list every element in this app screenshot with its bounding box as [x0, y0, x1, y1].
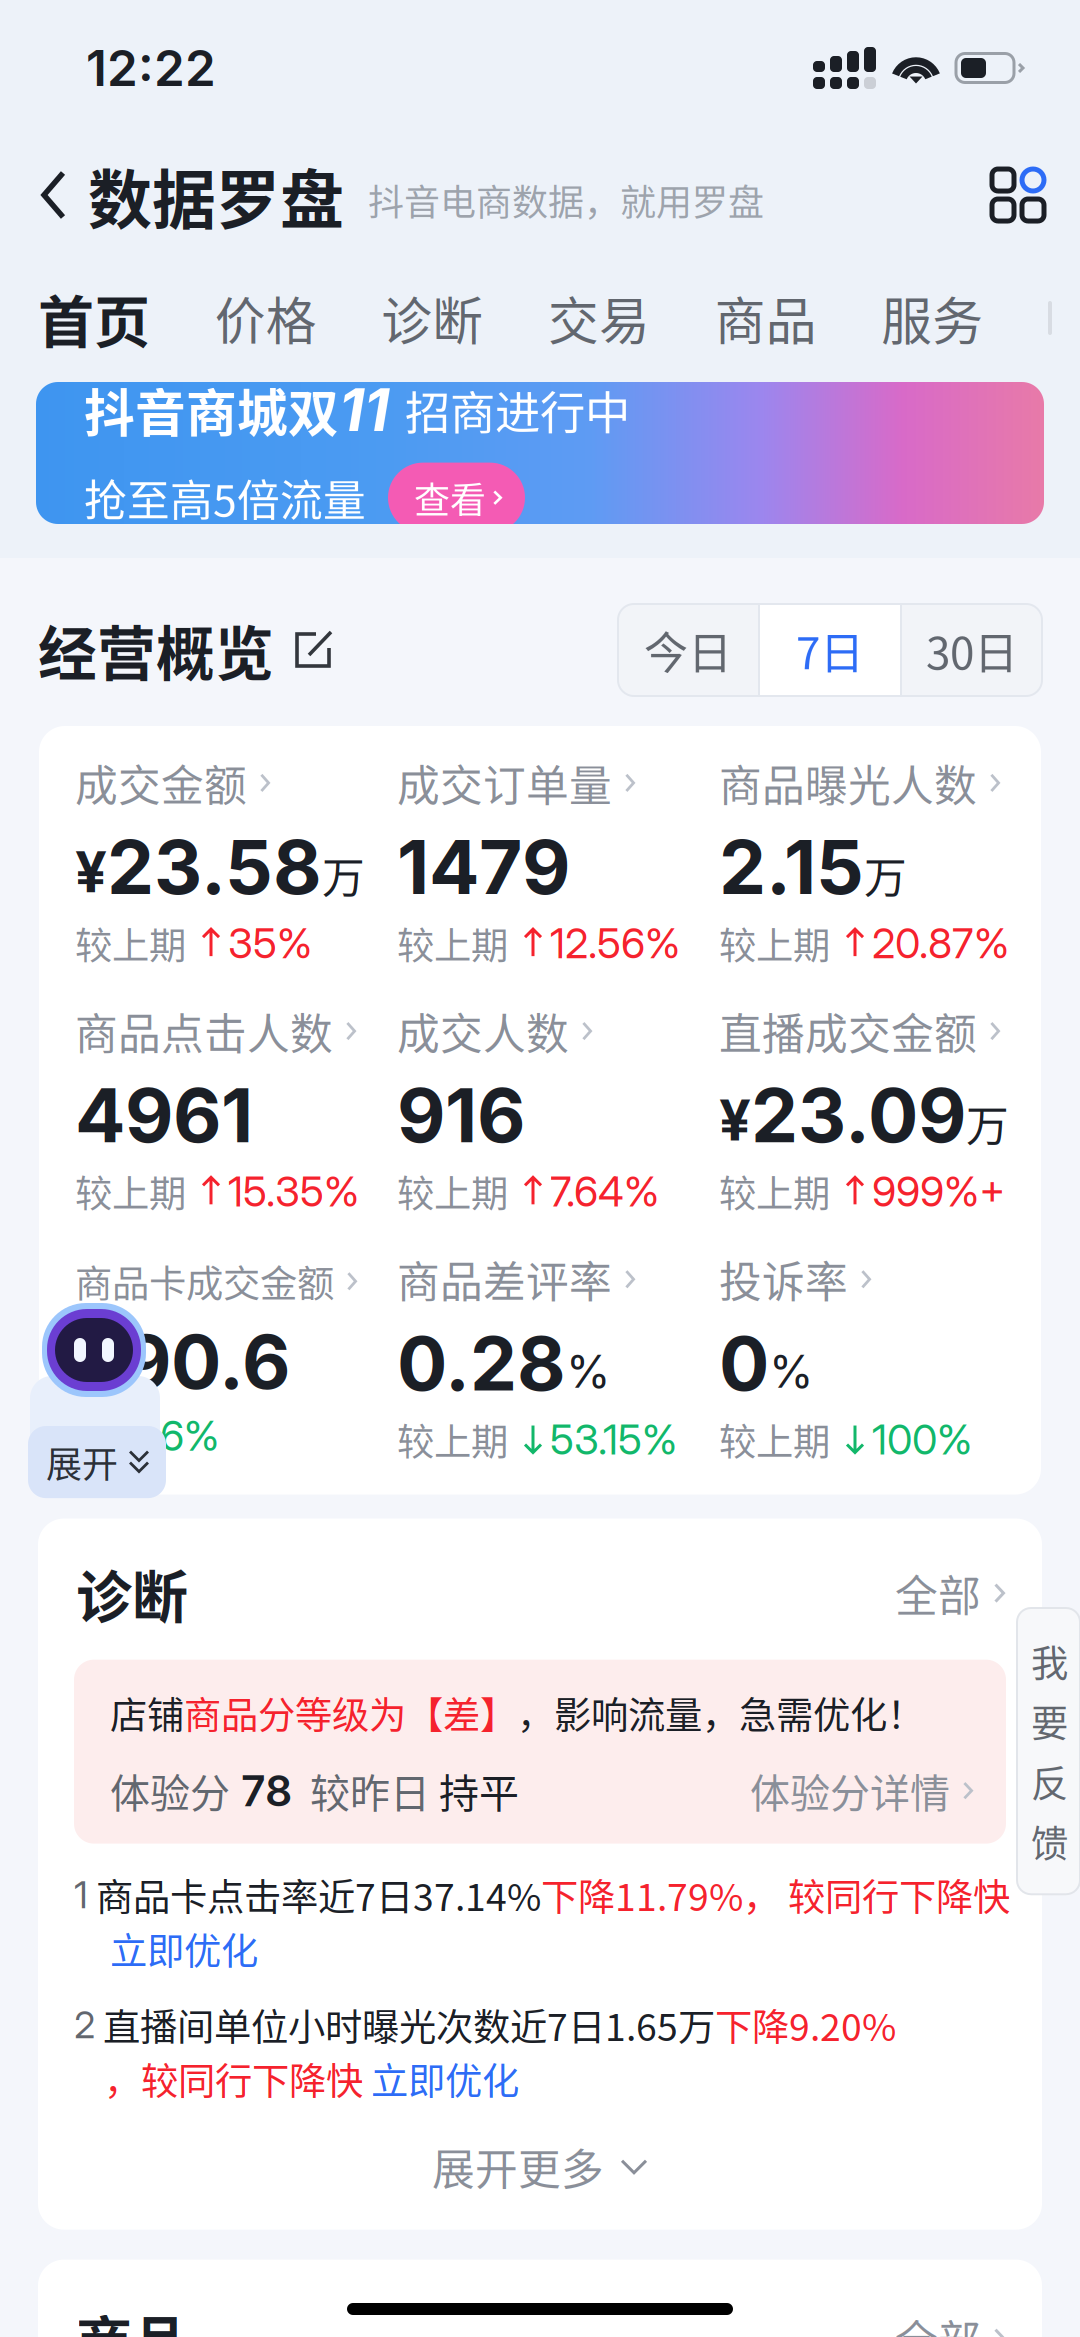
- button[interactable]: 30日: [902, 604, 1042, 696]
- staticText: 1479: [397, 822, 570, 912]
- button[interactable]: 今日: [618, 604, 758, 696]
- button[interactable]: 立即优化: [74, 1922, 258, 1976]
- staticText: 商品: [76, 2298, 188, 2337]
- staticText: 较上期: [397, 1412, 508, 1467]
- staticText: 万: [966, 1092, 1009, 1154]
- button[interactable]: 交易: [548, 281, 650, 355]
- staticText: 查看: [414, 472, 486, 524]
- staticText: 较上期: [397, 1164, 508, 1218]
- button[interactable]: 展开更多: [38, 2136, 1042, 2198]
- button[interactable]: 体验分详情: [750, 1762, 974, 1820]
- button[interactable]: 7日: [760, 604, 900, 696]
- staticText: 23.09: [751, 1070, 966, 1160]
- staticText: 投诉率: [719, 1248, 848, 1310]
- staticText: 价格: [215, 281, 317, 355]
- staticText: 较上期: [75, 916, 186, 970]
- button[interactable]: 商品曝光人数: [719, 752, 1041, 970]
- staticText: 20.87%: [872, 918, 1009, 968]
- staticText: 12:22: [86, 38, 216, 98]
- button[interactable]: 立即优化: [363, 2052, 519, 2106]
- staticText: 今日: [644, 618, 732, 682]
- button[interactable]: 编辑: [274, 629, 334, 671]
- button[interactable]: 商品卡成交金额: [75, 1254, 397, 1461]
- staticText: 7.64%: [550, 1166, 659, 1216]
- button[interactable]: 成交金额: [75, 752, 397, 970]
- staticText: 0: [719, 1318, 769, 1408]
- staticText: 抖音电商数据，就用罗盘: [368, 174, 764, 226]
- staticText: 7日: [796, 618, 864, 682]
- staticText: %: [566, 1344, 611, 1399]
- staticText: 交易: [548, 281, 650, 355]
- button[interactable]: 成交订单量: [397, 752, 719, 970]
- staticText: 35%: [228, 918, 312, 968]
- staticText: 抢至高5倍流量: [84, 467, 366, 529]
- staticText: 1: [74, 1872, 88, 1917]
- staticText: 直播成交金额: [719, 1000, 977, 1062]
- staticText: 成交金额: [75, 752, 247, 814]
- button[interactable]: 返回: [38, 169, 88, 221]
- staticText: 916: [397, 1070, 525, 1160]
- staticText: 较昨日: [292, 1762, 430, 1820]
- button[interactable]: 投诉率: [719, 1248, 1041, 1467]
- staticText: 较上期: [719, 1164, 830, 1218]
- button[interactable]: 抖音商城双: [0, 382, 1080, 524]
- staticText: 商品: [715, 281, 817, 355]
- staticText: ，较同行下降快: [104, 2052, 363, 2106]
- button[interactable]: AI 助手: [28, 1300, 218, 1520]
- staticText: 较同行下降快: [780, 1868, 1010, 1922]
- staticText: 数据罗盘: [88, 149, 344, 241]
- button[interactable]: 商品: [715, 281, 817, 355]
- staticText: 体验分: [110, 1762, 230, 1820]
- staticText: 我: [1031, 1634, 1068, 1688]
- staticText: 12.56%: [550, 918, 680, 968]
- staticText: 经营概览: [38, 607, 274, 692]
- staticText: 商品卡成交金额: [75, 1254, 334, 1308]
- staticText: 较上期: [719, 1412, 830, 1467]
- button[interactable]: 成交人数: [397, 1000, 719, 1218]
- button[interactable]: 直播成交金额: [719, 1000, 1041, 1218]
- button[interactable]: 商品差评率: [397, 1248, 719, 1467]
- button[interactable]: 首页: [38, 277, 150, 359]
- staticText: 商品分等级为【差】: [184, 1686, 517, 1740]
- staticText: 商品曝光人数: [719, 752, 977, 814]
- staticText: 4961: [75, 1070, 253, 1160]
- staticText: 全部: [895, 1562, 981, 1624]
- staticText: 抖音商城双: [84, 373, 339, 447]
- button[interactable]: 服务: [881, 281, 983, 355]
- staticText: ，影响流量，急需优化！: [517, 1686, 924, 1740]
- staticText: 服务: [881, 281, 983, 355]
- staticText: 较上期: [719, 916, 830, 970]
- staticText: 23.58: [107, 822, 322, 912]
- staticText: 商品点击人数: [75, 1000, 333, 1062]
- button[interactable]: 价格: [215, 281, 317, 355]
- staticText: 展开: [46, 1436, 118, 1488]
- staticText: 较上期: [75, 1164, 186, 1218]
- button[interactable]: 全部: [895, 2307, 1006, 2337]
- staticText: 店铺: [110, 1686, 184, 1740]
- button[interactable]: 工作台: [992, 169, 1044, 221]
- staticText: 展开更多: [432, 2136, 604, 2198]
- staticText: 立即优化: [110, 1922, 258, 1976]
- staticText: 30日: [926, 618, 1018, 682]
- staticText: 万: [322, 844, 365, 906]
- staticText: 反: [1031, 1754, 1068, 1808]
- button[interactable]: 全部: [895, 1562, 1006, 1624]
- staticText: 390.6: [75, 1316, 290, 1407]
- button[interactable]: 我要反馈: [1017, 1608, 1080, 1894]
- staticText: 商品卡点击率近7日37.14%: [88, 1868, 541, 1922]
- staticText: %: [769, 1344, 814, 1399]
- staticText: 8.36%: [103, 1411, 219, 1461]
- staticText: 下降11.79%，: [541, 1868, 780, 1922]
- staticText: 53.15%: [550, 1414, 677, 1464]
- button[interactable]: 商品点击人数: [75, 1000, 397, 1218]
- staticText: 15.35%: [228, 1166, 359, 1216]
- staticText: 招商进行中: [405, 377, 630, 443]
- button[interactable]: 诊断: [381, 281, 483, 355]
- staticText: 馈: [1031, 1814, 1068, 1868]
- staticText: 0.28: [397, 1318, 566, 1408]
- staticText: 100%: [872, 1414, 972, 1464]
- staticText: 全部: [895, 2307, 981, 2337]
- staticText: 2.15: [719, 822, 864, 912]
- staticText: 持平: [430, 1762, 519, 1820]
- staticText: 较上期: [397, 916, 508, 970]
